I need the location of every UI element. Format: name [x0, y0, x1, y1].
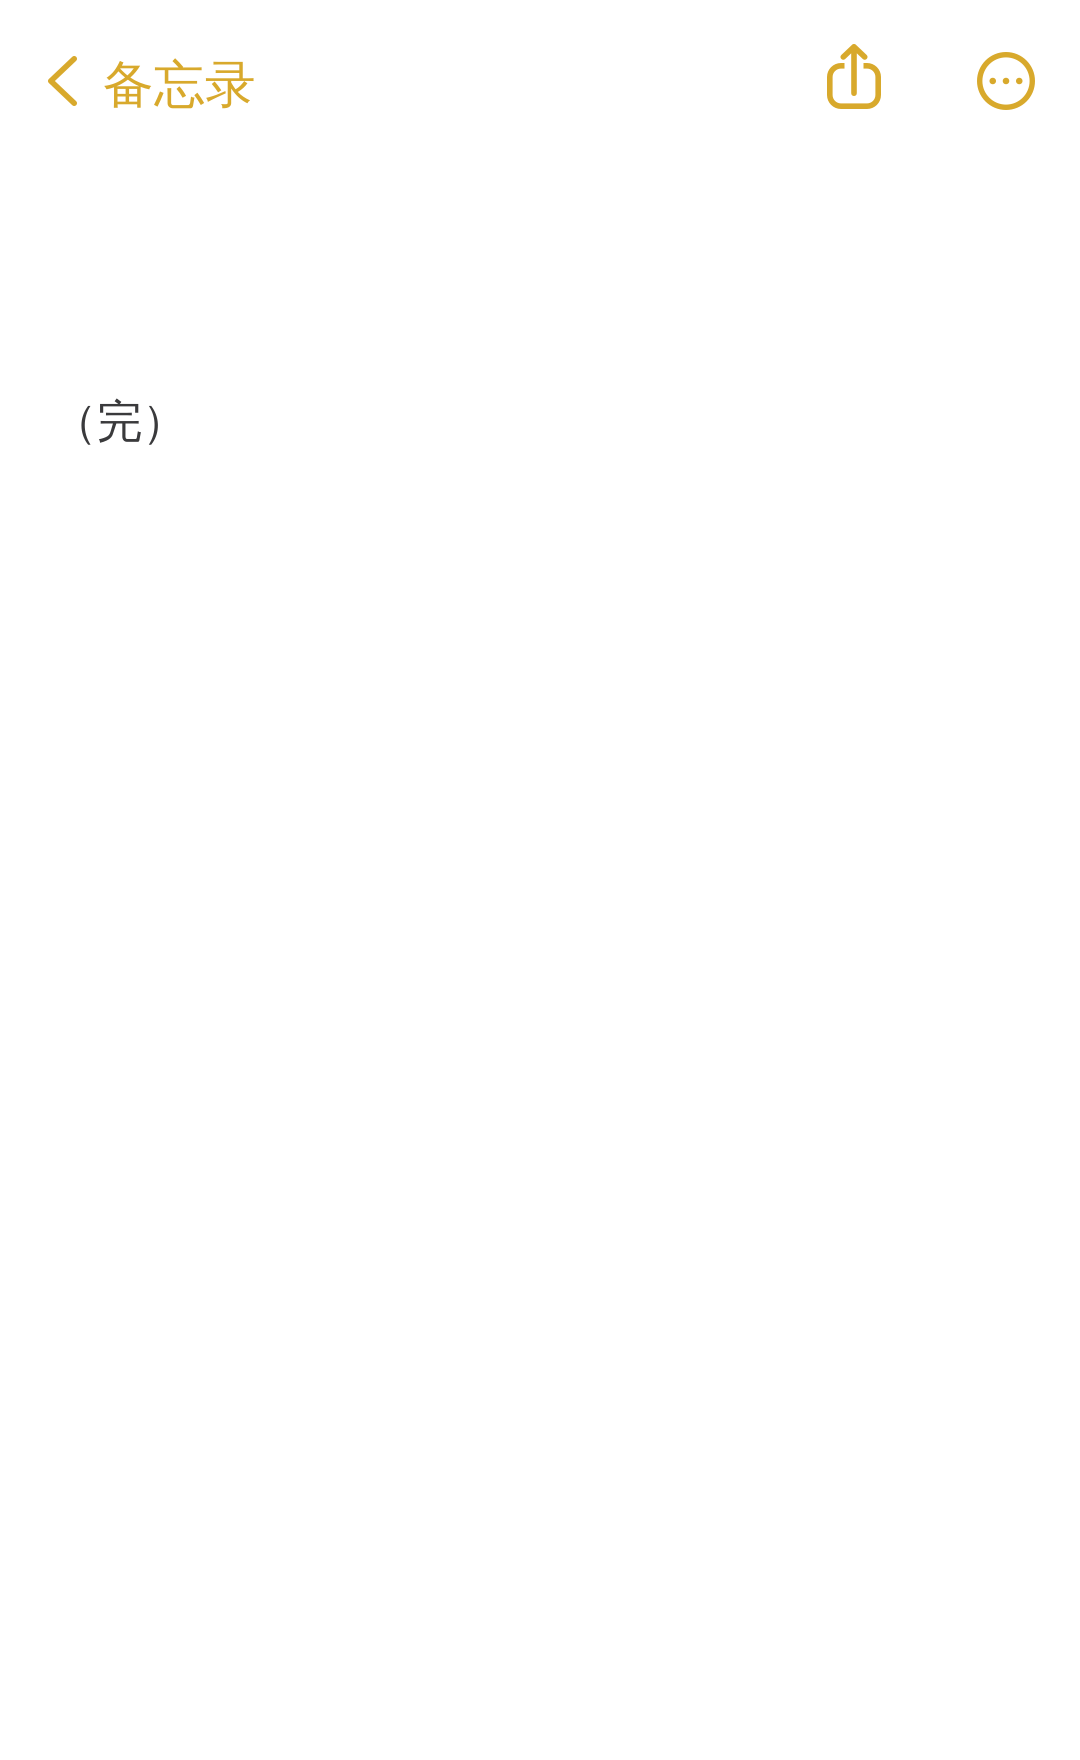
staticText: （完） [52, 394, 187, 450]
button[interactable]: 备忘录 [0, 0, 399, 162]
staticText: 备忘录 [103, 54, 256, 116]
button[interactable]: More [950, 0, 1062, 162]
button[interactable]: Share [798, 0, 910, 162]
